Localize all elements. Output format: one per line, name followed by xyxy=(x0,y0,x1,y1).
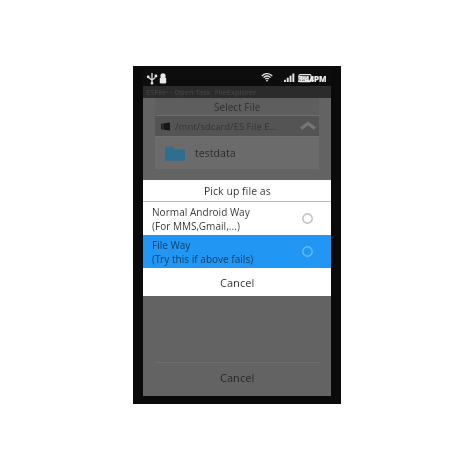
button[interactable]: File Way xyxy=(143,235,331,268)
staticText: testdata xyxy=(195,146,236,160)
staticText: (Try this if above fails) xyxy=(152,252,254,266)
button[interactable]: testdata xyxy=(155,137,319,169)
staticText: Normal Android Way xyxy=(152,205,250,219)
button[interactable]: /mnt/sdcard/ES File E... xyxy=(155,116,319,136)
other: Collapse xyxy=(300,121,316,131)
staticText: Cancel xyxy=(220,275,255,290)
button[interactable]: Select File xyxy=(155,98,319,115)
staticText: Pick up file as xyxy=(204,184,271,198)
button[interactable]: Cancel xyxy=(143,268,331,296)
staticText: File Way xyxy=(152,238,191,252)
button[interactable]: Cancel xyxy=(155,362,319,392)
staticText: ESFile··· Open Task FileExplorer xyxy=(146,87,257,97)
staticText: Cancel xyxy=(220,370,255,385)
staticText: /mnt/sdcard/ES File E... xyxy=(175,120,278,133)
staticText: Select File xyxy=(214,100,261,114)
staticText: (For MMS,Gmail,...) xyxy=(152,219,240,233)
button[interactable]: Normal Android Way xyxy=(143,202,331,235)
staticText: 3:44PM xyxy=(298,73,327,84)
